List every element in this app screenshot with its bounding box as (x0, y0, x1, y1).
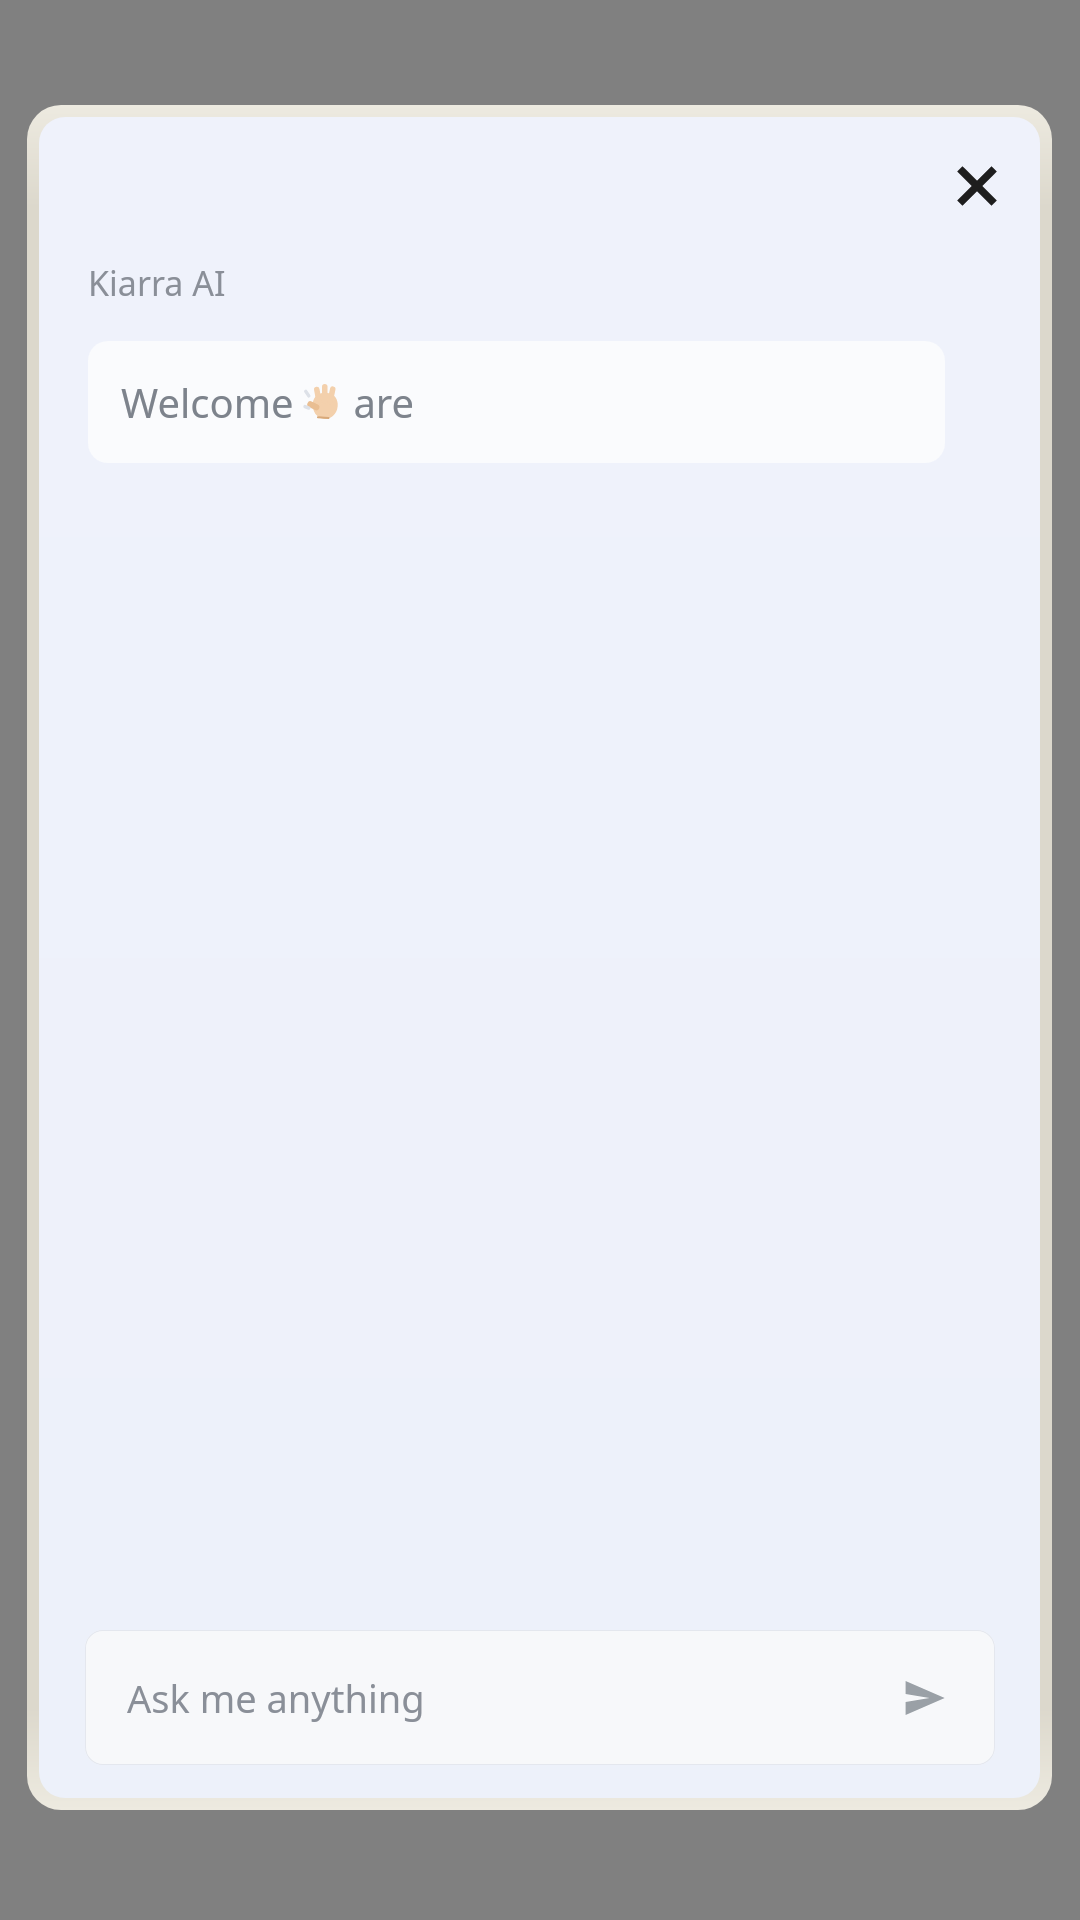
button[interactable]: Send (887, 1661, 961, 1735)
staticText: Welcome (121, 375, 305, 429)
staticText: Ask me anything (127, 1672, 887, 1724)
staticText: Kiarra AI (88, 260, 226, 306)
button[interactable]: Close (927, 136, 1027, 236)
staticText: are (343, 375, 415, 429)
button[interactable]: Welcome (88, 341, 945, 463)
button[interactable]: Ask me anything (85, 1630, 995, 1765)
